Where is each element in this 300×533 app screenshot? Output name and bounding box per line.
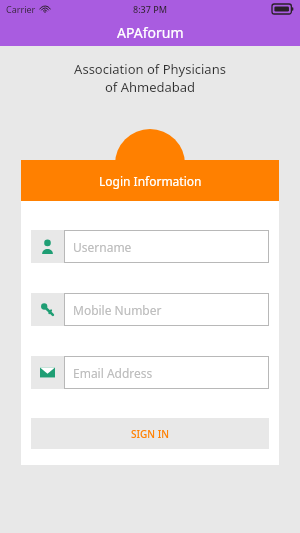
staticText: Carrier: [6, 3, 36, 15]
button[interactable]: Email Address: [31, 356, 64, 389]
button[interactable]: Email Address: [64, 356, 269, 389]
staticText: Email Address: [73, 365, 153, 381]
staticText: 8:37 PM: [133, 3, 167, 15]
staticText: Username: [73, 239, 132, 255]
button[interactable]: SIGN IN: [31, 418, 269, 449]
button[interactable]: Mobile Number: [31, 293, 64, 326]
button[interactable]: Username: [64, 230, 269, 263]
staticText: Mobile Number: [73, 302, 162, 318]
button[interactable]: Mobile Number: [64, 293, 269, 326]
button[interactable]: Username: [31, 230, 64, 263]
staticText: APAforum: [117, 23, 184, 42]
staticText: Login Information: [99, 173, 202, 189]
staticText: Association of Physicians of Ahmedabad: [0, 60, 300, 96]
staticText: SIGN IN: [131, 427, 169, 441]
